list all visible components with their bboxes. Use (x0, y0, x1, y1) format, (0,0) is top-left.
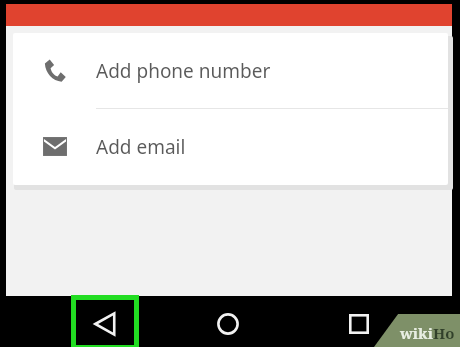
staticText: wiki (400, 323, 433, 343)
button[interactable]: Home (203, 301, 253, 347)
staticText: Add phone number (96, 58, 271, 84)
button[interactable]: Add phone number (13, 33, 448, 108)
button[interactable]: Add email (13, 109, 448, 184)
button[interactable]: Back (76, 301, 134, 347)
button[interactable]: Recent apps (334, 301, 384, 347)
staticText: Add email (96, 134, 186, 160)
staticText: How (433, 323, 460, 347)
